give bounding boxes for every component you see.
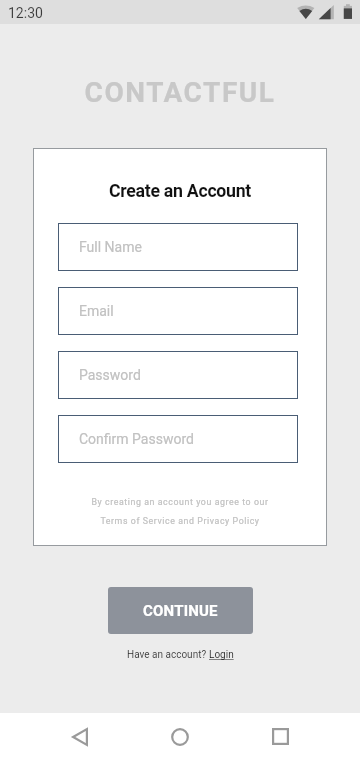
button[interactable]: Recents bbox=[256, 713, 304, 760]
button[interactable]: Full Name bbox=[58, 223, 298, 271]
staticText: Have an account? bbox=[127, 649, 209, 661]
button[interactable]: Home bbox=[156, 713, 204, 760]
staticText: Email bbox=[79, 303, 114, 319]
button[interactable]: Confirm Password bbox=[58, 415, 298, 463]
button[interactable]: Login bbox=[209, 649, 234, 661]
staticText: CONTINUE bbox=[143, 602, 218, 620]
button[interactable]: Password bbox=[58, 351, 298, 399]
button[interactable]: CONTINUE bbox=[108, 587, 253, 634]
button[interactable]: Back bbox=[56, 713, 104, 760]
staticText: Terms of Service and Privacy Policy bbox=[33, 516, 327, 526]
staticText: 12:30 bbox=[8, 5, 43, 21]
staticText: CONTACTFUL bbox=[0, 76, 360, 109]
staticText: Confirm Password bbox=[79, 431, 194, 447]
button[interactable]: Email bbox=[58, 287, 298, 335]
staticText: Create an Account bbox=[33, 181, 327, 202]
staticText: Full Name bbox=[79, 239, 142, 255]
staticText: By creating an account you agree to our bbox=[33, 497, 327, 507]
staticText: Password bbox=[79, 367, 141, 383]
staticText: Login bbox=[209, 649, 234, 661]
